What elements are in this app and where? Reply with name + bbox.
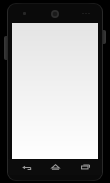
button[interactable]: Home: [43, 159, 67, 175]
button[interactable]: Back: [14, 159, 38, 175]
button[interactable]: Recent apps: [73, 159, 97, 175]
